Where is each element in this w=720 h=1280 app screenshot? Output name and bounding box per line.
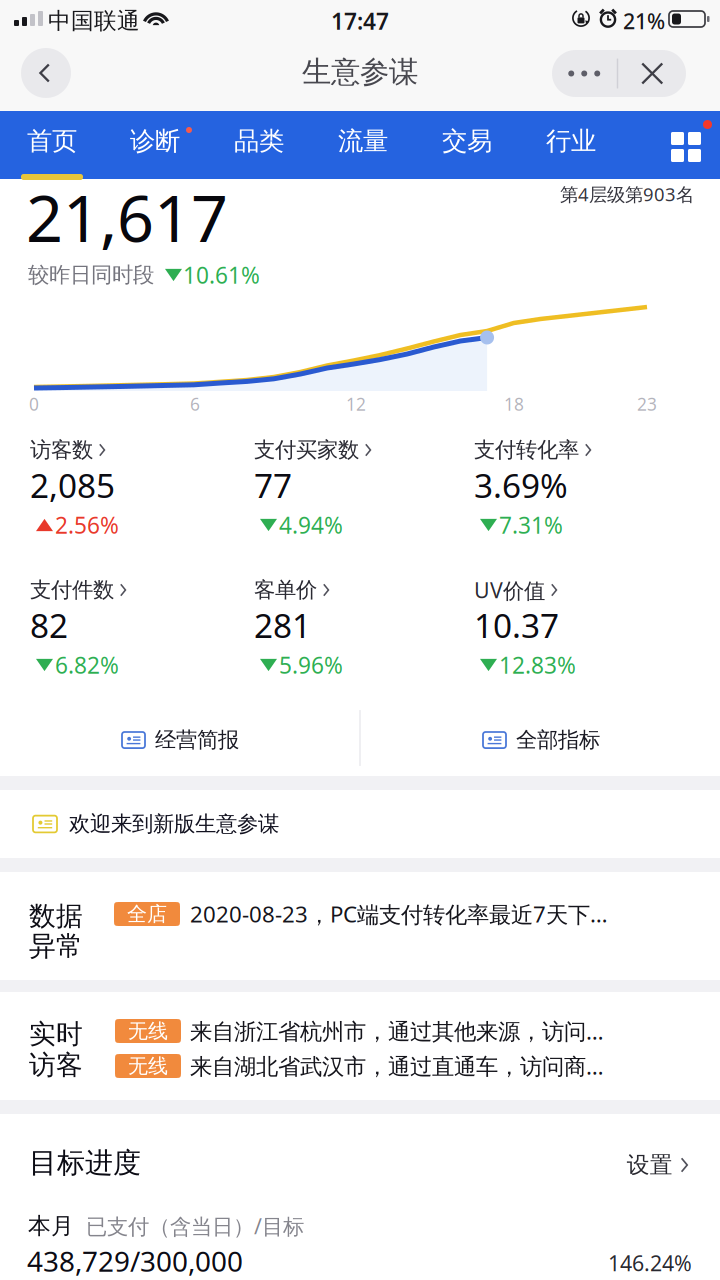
button[interactable]: 交易 <box>419 111 515 179</box>
staticText: 异常 <box>29 930 83 962</box>
button[interactable]: 全部指标 <box>360 706 720 774</box>
staticText: 全店 <box>127 902 167 926</box>
staticText: 10.37 <box>474 603 559 647</box>
staticText: 行业 <box>546 125 596 156</box>
button[interactable]: 数据 <box>0 872 720 980</box>
staticText: 已支付（含当日）/目标 <box>86 1212 304 1240</box>
staticText: 首页 <box>27 125 77 156</box>
button[interactable]: All modules <box>654 111 718 179</box>
staticText: 18 <box>504 392 524 415</box>
button[interactable]: Back <box>21 48 71 98</box>
staticText: 第4层级第903名 <box>560 181 694 207</box>
staticText: 2.56% <box>55 510 119 540</box>
button[interactable]: 支付件数 <box>30 578 240 686</box>
staticText: UV价值 <box>474 576 545 604</box>
staticText: 本月 <box>28 1212 74 1240</box>
staticText: 经营简报 <box>155 727 239 753</box>
button[interactable]: 诊断 <box>107 111 203 179</box>
staticText: 访客 <box>29 1049 83 1081</box>
staticText: 支付买家数 <box>254 437 359 463</box>
staticText: 12 <box>346 392 366 415</box>
staticText: 生意参谋 <box>302 54 418 90</box>
staticText: 无线 <box>128 1054 168 1078</box>
button[interactable]: 支付买家数 <box>254 438 464 546</box>
staticText: 设置 <box>627 1151 673 1179</box>
staticText: 21,617 <box>26 173 228 261</box>
staticText: 无线 <box>128 1019 168 1043</box>
staticText: 281 <box>254 603 311 647</box>
staticText: 支付件数 <box>30 577 114 603</box>
button[interactable]: UV价值 <box>474 578 684 686</box>
staticText: 10.61% <box>183 260 260 290</box>
staticText: 来自浙江省杭州市，通过其他来源，访问… <box>190 1016 604 1046</box>
staticText: 数据 <box>29 900 83 932</box>
staticText: 来自湖北省武汉市，通过直通车，访问商… <box>190 1051 604 1081</box>
staticText: 12.83% <box>499 650 576 680</box>
button[interactable]: 流量 <box>315 111 411 179</box>
staticText: 23 <box>637 392 657 415</box>
button[interactable]: 行业 <box>523 111 619 179</box>
button[interactable]: More options <box>552 48 617 98</box>
staticText: 6 <box>190 392 200 415</box>
button[interactable]: Close <box>618 48 686 98</box>
button[interactable]: 欢迎来到新版生意参谋 <box>0 790 720 858</box>
staticText: 支付转化率 <box>474 437 579 463</box>
staticText: 交易 <box>442 125 492 156</box>
button[interactable]: 经营简报 <box>0 706 360 774</box>
staticText: 2,085 <box>30 463 115 507</box>
staticText: 流量 <box>338 125 388 156</box>
staticText: 5.96% <box>279 650 343 680</box>
button[interactable]: 设置 <box>558 1147 688 1183</box>
staticText: 中国联通 <box>48 7 140 35</box>
staticText: 全部指标 <box>516 727 600 753</box>
staticText: 2020-08-23，PC端支付转化率最近7天下… <box>190 899 608 929</box>
staticText: 客单价 <box>254 577 317 603</box>
staticText: 6.82% <box>55 650 119 680</box>
button[interactable]: 访客数 <box>30 438 240 546</box>
staticText: 实时 <box>29 1018 83 1050</box>
button[interactable]: 实时 <box>0 992 720 1100</box>
staticText: 17:47 <box>331 6 389 36</box>
staticText: 77 <box>254 463 292 507</box>
staticText: 诊断 <box>130 125 180 156</box>
staticText: 21% <box>623 7 665 35</box>
button[interactable]: 客单价 <box>254 578 464 686</box>
staticText: 0 <box>29 392 39 415</box>
staticText: 较昨日同时段 <box>28 262 154 288</box>
staticText: 欢迎来到新版生意参谋 <box>69 811 279 837</box>
button[interactable]: 支付转化率 <box>474 438 684 546</box>
staticText: 目标进度 <box>29 1146 141 1180</box>
staticText: 访客数 <box>30 437 93 463</box>
staticText: 146.24% <box>608 1249 692 1277</box>
staticText: 品类 <box>234 125 284 156</box>
staticText: 7.31% <box>499 510 563 540</box>
staticText: 438,729/300,000 <box>27 1242 243 1280</box>
button[interactable]: 首页 <box>4 111 100 179</box>
staticText: 3.69% <box>474 463 568 507</box>
button[interactable]: 品类 <box>211 111 307 179</box>
staticText: 82 <box>30 603 68 647</box>
staticText: 4.94% <box>279 510 343 540</box>
